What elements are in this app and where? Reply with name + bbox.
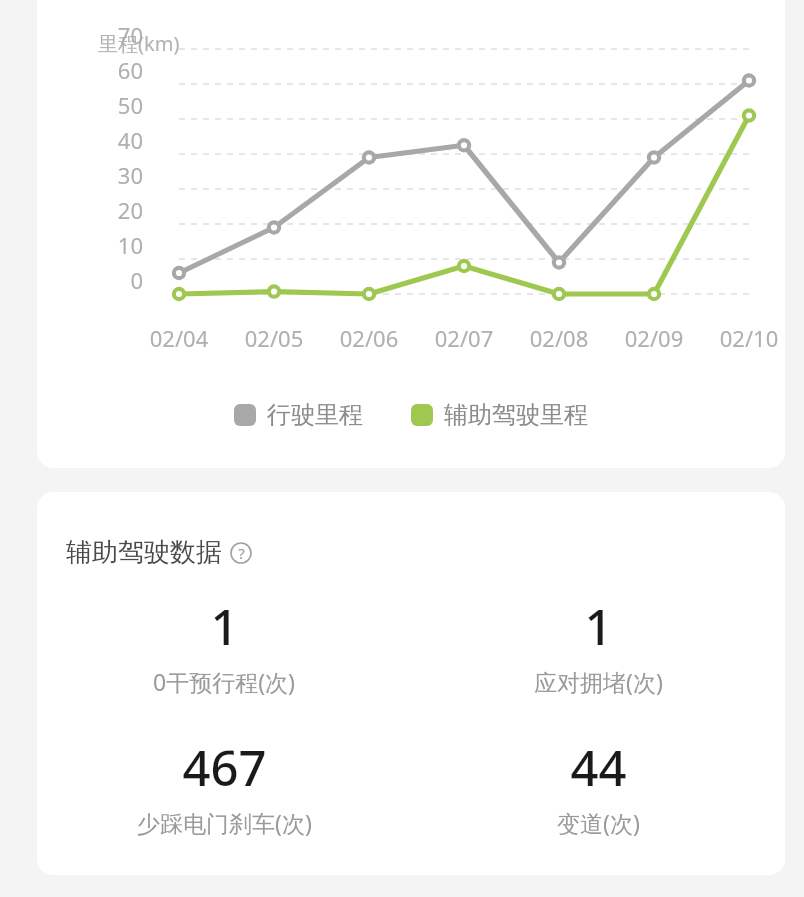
staticText: 行驶里程 <box>267 400 363 430</box>
staticText: 应对拥堵(次) <box>534 666 663 697</box>
staticText: 40 <box>101 125 143 155</box>
button[interactable]: 辅助驾驶里程 <box>411 400 588 430</box>
button[interactable]: 辅助驾驶数据 <box>66 536 252 569</box>
staticText: 少踩电门刹车(次) <box>137 807 312 838</box>
staticText: 02/08 <box>514 323 604 353</box>
staticText: 变道(次) <box>557 807 640 838</box>
staticText: 02/06 <box>324 323 414 353</box>
staticText: 20 <box>101 195 143 225</box>
staticText: 02/07 <box>419 323 509 353</box>
button[interactable]: 467 <box>37 734 411 838</box>
button[interactable]: 44 <box>411 734 785 838</box>
staticText: 44 <box>570 734 627 801</box>
staticText: 02/04 <box>134 323 224 353</box>
staticText: 02/05 <box>229 323 319 353</box>
staticText: 1 <box>584 593 613 660</box>
staticText: 0干预行程(次) <box>153 666 295 697</box>
staticText: 10 <box>101 230 143 260</box>
staticText: 70 <box>101 20 143 50</box>
staticText: ? <box>238 543 245 563</box>
staticText: 50 <box>101 90 143 120</box>
button[interactable]: Help <box>230 542 252 564</box>
staticText: 0 <box>101 265 143 295</box>
staticText: 里程(km) <box>98 30 180 57</box>
button[interactable]: 行驶里程 <box>234 400 363 430</box>
staticText: 辅助驾驶数据 <box>66 536 222 569</box>
staticText: 02/10 <box>704 323 785 353</box>
button[interactable]: 1 <box>37 593 411 697</box>
staticText: 辅助驾驶里程 <box>444 400 588 430</box>
staticText: 02/09 <box>609 323 699 353</box>
staticText: 467 <box>182 734 267 801</box>
staticText: 1 <box>210 593 239 660</box>
staticText: 60 <box>101 55 143 85</box>
staticText: 30 <box>101 160 143 190</box>
button[interactable]: 1 <box>411 593 785 697</box>
